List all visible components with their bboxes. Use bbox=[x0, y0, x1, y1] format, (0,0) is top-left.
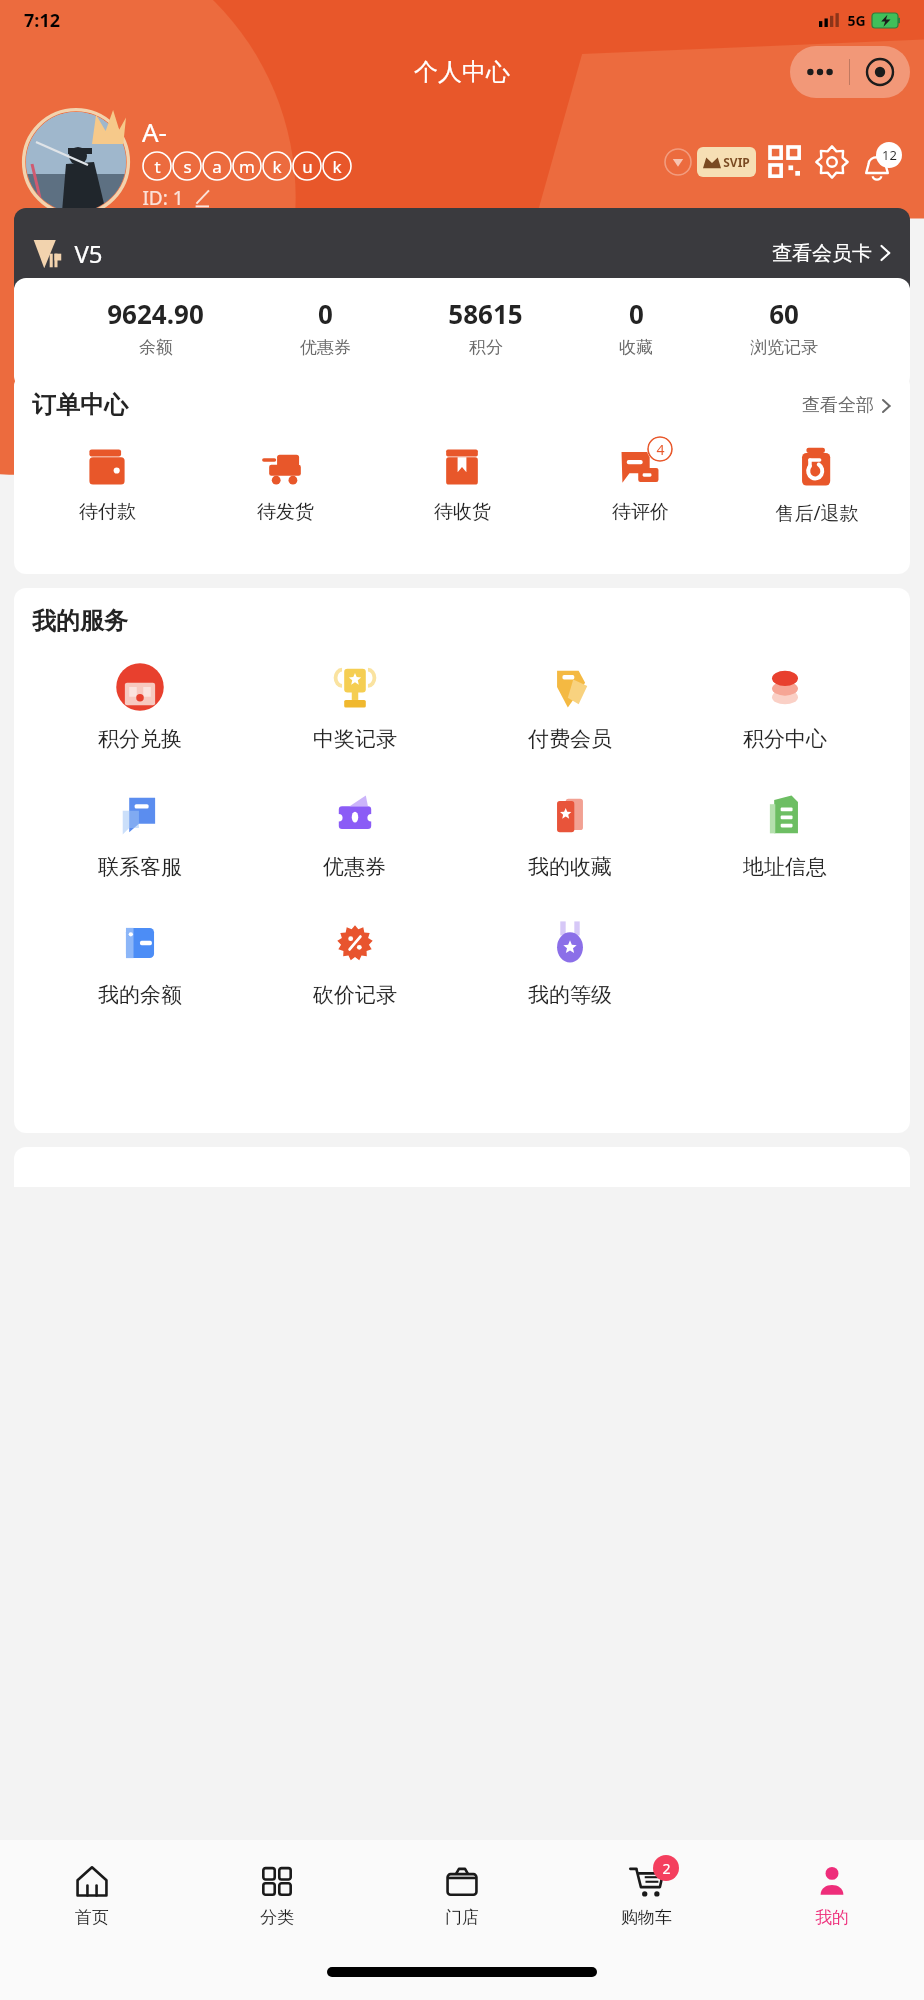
button[interactable]: SVIP bbox=[703, 147, 750, 177]
button[interactable]: Edit bbox=[192, 188, 212, 208]
staticText: 待发货 bbox=[257, 500, 314, 524]
staticText: 优惠券 bbox=[323, 854, 386, 880]
button[interactable]: Settings bbox=[816, 146, 848, 178]
staticText: 0 bbox=[318, 296, 333, 331]
button[interactable]: Target bbox=[850, 46, 910, 98]
button[interactable]: 门店 bbox=[369, 1840, 554, 1944]
staticText: 7:12 bbox=[24, 8, 60, 33]
button[interactable]: 售后/退款 bbox=[742, 440, 892, 526]
button[interactable]: 积分兑换 bbox=[94, 656, 186, 756]
staticText: 4 bbox=[656, 440, 665, 459]
staticText: 60 bbox=[769, 296, 799, 331]
staticText: V5 bbox=[74, 237, 103, 270]
button[interactable]: 60 bbox=[746, 296, 822, 358]
button[interactable]: 我的等级 bbox=[524, 912, 616, 1012]
staticText: s bbox=[183, 155, 192, 178]
button[interactable]: 联系客服 bbox=[94, 784, 186, 884]
button[interactable]: V5 bbox=[14, 208, 910, 298]
staticText: 查看会员卡 bbox=[772, 241, 872, 266]
staticText: 砍价记录 bbox=[313, 982, 397, 1008]
staticText: 积分 bbox=[469, 337, 503, 358]
staticText: 查看全部 bbox=[802, 394, 874, 417]
staticText: 我的服务 bbox=[32, 606, 128, 636]
staticText: 收藏 bbox=[619, 337, 653, 358]
staticText: 5G bbox=[847, 11, 866, 30]
staticText: 购物车 bbox=[621, 1907, 672, 1928]
button[interactable]: 查看全部 bbox=[802, 394, 892, 417]
button[interactable]: 0 bbox=[615, 296, 657, 358]
staticText: 付费会员 bbox=[528, 726, 612, 752]
button[interactable]: QR code bbox=[770, 147, 800, 177]
staticText: 58615 bbox=[448, 296, 523, 331]
staticText: 余额 bbox=[139, 337, 173, 358]
button[interactable]: Notifications bbox=[862, 142, 902, 182]
button[interactable]: More bbox=[790, 46, 849, 98]
staticText: 浏览记录 bbox=[750, 337, 818, 358]
button[interactable]: 待付款 bbox=[32, 440, 182, 524]
staticText: ID: 1 bbox=[142, 185, 184, 211]
staticText: 我的收藏 bbox=[528, 854, 612, 880]
button[interactable]: 待发货 bbox=[210, 440, 360, 524]
staticText: 售后/退款 bbox=[775, 500, 859, 526]
staticText: m bbox=[239, 155, 255, 178]
staticText: 订单中心 bbox=[32, 390, 128, 420]
staticText: 首页 bbox=[75, 1907, 109, 1928]
button[interactable]: 4 bbox=[565, 440, 715, 524]
staticText: t bbox=[154, 155, 161, 178]
button[interactable]: 积分中心 bbox=[739, 656, 831, 756]
staticText: 12 bbox=[882, 146, 897, 164]
staticText: k bbox=[272, 155, 282, 178]
staticText: k bbox=[332, 155, 342, 178]
button[interactable]: 待收货 bbox=[387, 440, 537, 524]
button[interactable]: 优惠券 bbox=[319, 784, 390, 884]
staticText: a bbox=[212, 155, 222, 178]
button[interactable]: 9624.90 bbox=[103, 296, 208, 358]
button[interactable] bbox=[26, 112, 126, 212]
button[interactable]: 58615 bbox=[444, 296, 527, 358]
staticText: 门店 bbox=[445, 1907, 479, 1928]
button[interactable]: 我的 bbox=[739, 1840, 924, 1944]
button[interactable]: 2 bbox=[554, 1840, 739, 1944]
staticText: 积分兑换 bbox=[98, 726, 182, 752]
staticText: 我的等级 bbox=[528, 982, 612, 1008]
staticText: u bbox=[302, 155, 313, 178]
staticText: 优惠券 bbox=[300, 337, 351, 358]
button[interactable]: 中奖记录 bbox=[309, 656, 401, 756]
staticText: 待付款 bbox=[79, 500, 136, 524]
staticText: 分类 bbox=[260, 1907, 294, 1928]
staticText: SVIP bbox=[723, 154, 750, 170]
button[interactable]: 付费会员 bbox=[524, 656, 616, 756]
staticText: 联系客服 bbox=[98, 854, 182, 880]
staticText: 积分中心 bbox=[743, 726, 827, 752]
button[interactable]: 我的收藏 bbox=[524, 784, 616, 884]
staticText: 0 bbox=[629, 296, 644, 331]
button[interactable]: 我的余额 bbox=[94, 912, 186, 1012]
staticText: 地址信息 bbox=[743, 854, 827, 880]
staticText: A- bbox=[142, 114, 167, 149]
staticText: 9624.90 bbox=[107, 296, 204, 331]
staticText: 中奖记录 bbox=[313, 726, 397, 752]
staticText: 2 bbox=[662, 1859, 671, 1878]
button[interactable]: 0 bbox=[296, 296, 355, 358]
button[interactable]: 地址信息 bbox=[739, 784, 831, 884]
staticText: 我的余额 bbox=[98, 982, 182, 1008]
staticText: 待评价 bbox=[612, 500, 669, 524]
staticText: 个人中心 bbox=[414, 57, 510, 87]
button[interactable]: 分类 bbox=[184, 1840, 369, 1944]
staticText: 待收货 bbox=[434, 500, 491, 524]
button[interactable]: 砍价记录 bbox=[309, 912, 401, 1012]
button[interactable]: 首页 bbox=[0, 1840, 184, 1944]
staticText: 我的 bbox=[815, 1907, 849, 1928]
